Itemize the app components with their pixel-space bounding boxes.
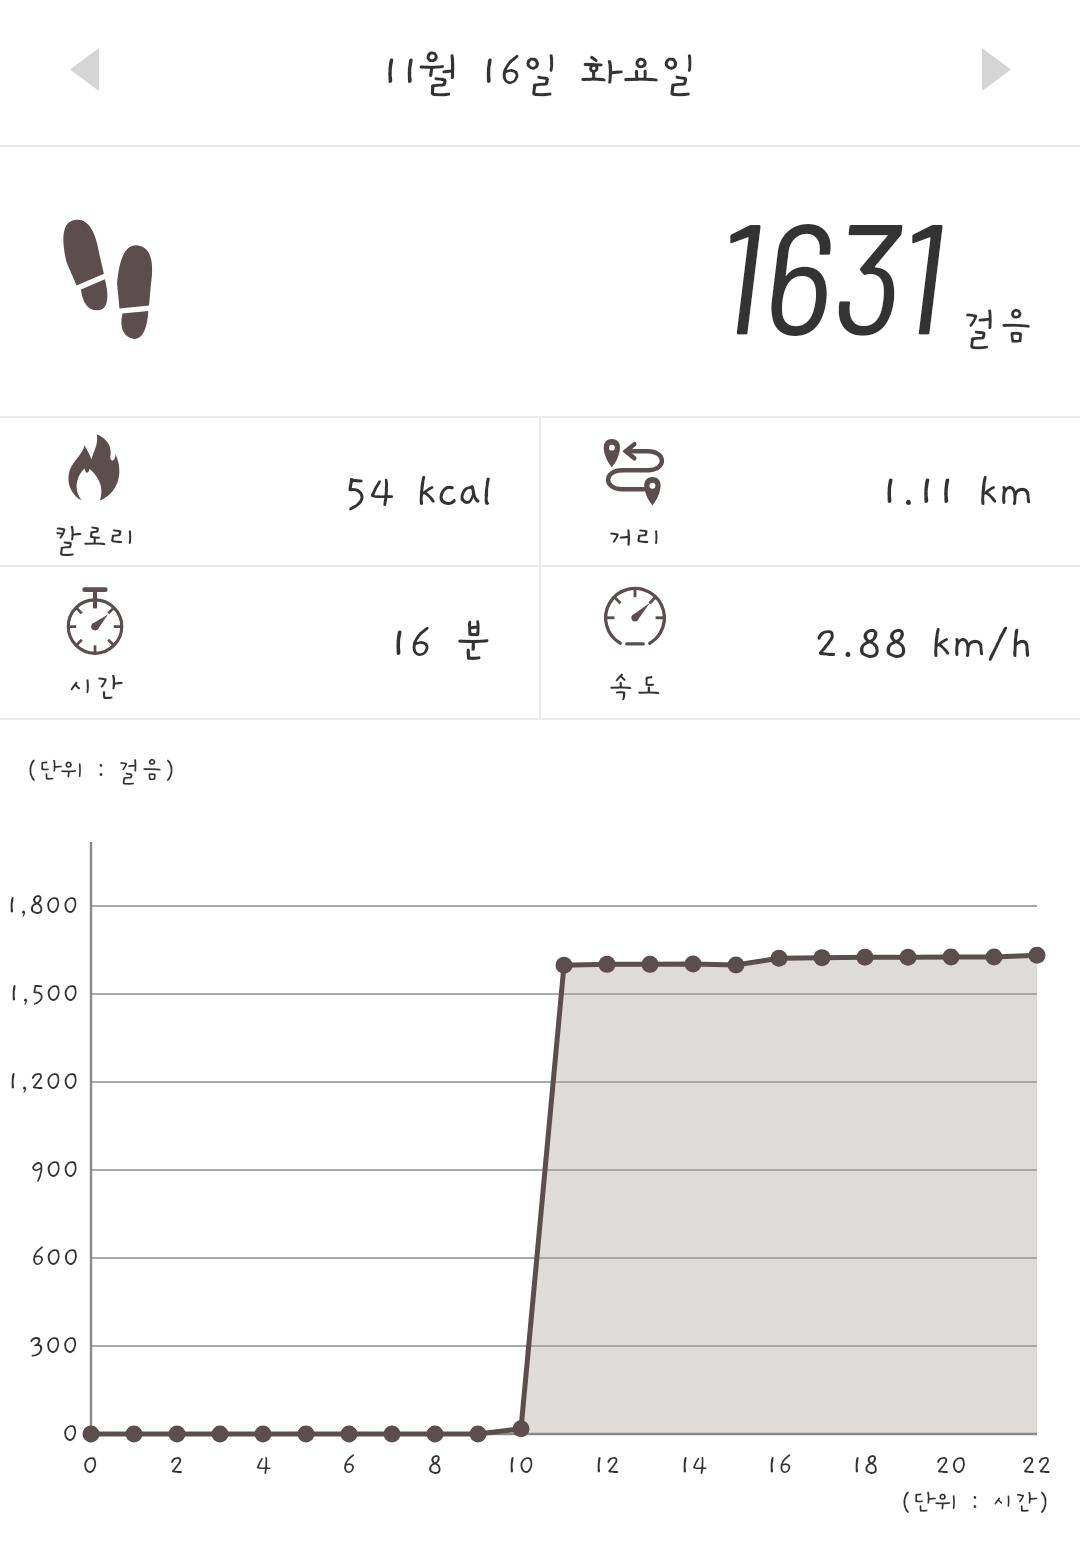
staticText: (단위 : 시간) [900,1489,1050,1517]
staticText: 1,800 [6,891,80,921]
staticText: 6 [342,1451,357,1481]
button[interactable]: 시간 [0,565,540,718]
button[interactable]: Next day [950,23,1042,115]
staticText: 20 [935,1451,968,1481]
staticText: 걸음 [962,306,1035,350]
staticText: 11월 16일 화요일 [381,49,700,97]
button[interactable]: 속도 [540,565,1080,718]
staticText: 1.11 km [880,468,1034,517]
staticText: (단위 : 걸음) [26,757,176,785]
staticText: 0 [82,1451,100,1481]
staticText: 12 [593,1451,621,1481]
staticText: 0 [62,1419,80,1449]
staticText: 18 [851,1451,880,1481]
staticText: 2.88 km/h [814,620,1034,669]
button[interactable]: 거리 [540,416,1080,563]
button[interactable]: 칼로리 [0,416,540,563]
staticText: 1,500 [8,979,80,1009]
staticText: 16 분 [389,620,494,669]
staticText: 4 [255,1451,272,1481]
staticText: 14 [679,1451,708,1481]
staticText: 10 [506,1451,536,1481]
staticText: 2 [169,1451,185,1481]
staticText: 시간 [67,671,123,705]
staticText: 54 kcal [344,468,494,517]
staticText: 속도 [607,671,663,705]
staticText: 칼로리 [53,522,137,556]
staticText: 600 [31,1243,80,1273]
staticText: 8 [427,1451,444,1481]
staticText: 1,200 [7,1067,80,1097]
staticText: 900 [30,1155,80,1185]
staticText: 16 [766,1451,793,1481]
staticText: 300 [29,1331,80,1361]
staticText: 1631 [716,179,944,366]
button[interactable]: Previous day [38,23,130,115]
staticText: 22 [1021,1451,1053,1481]
staticText: 거리 [607,522,663,556]
